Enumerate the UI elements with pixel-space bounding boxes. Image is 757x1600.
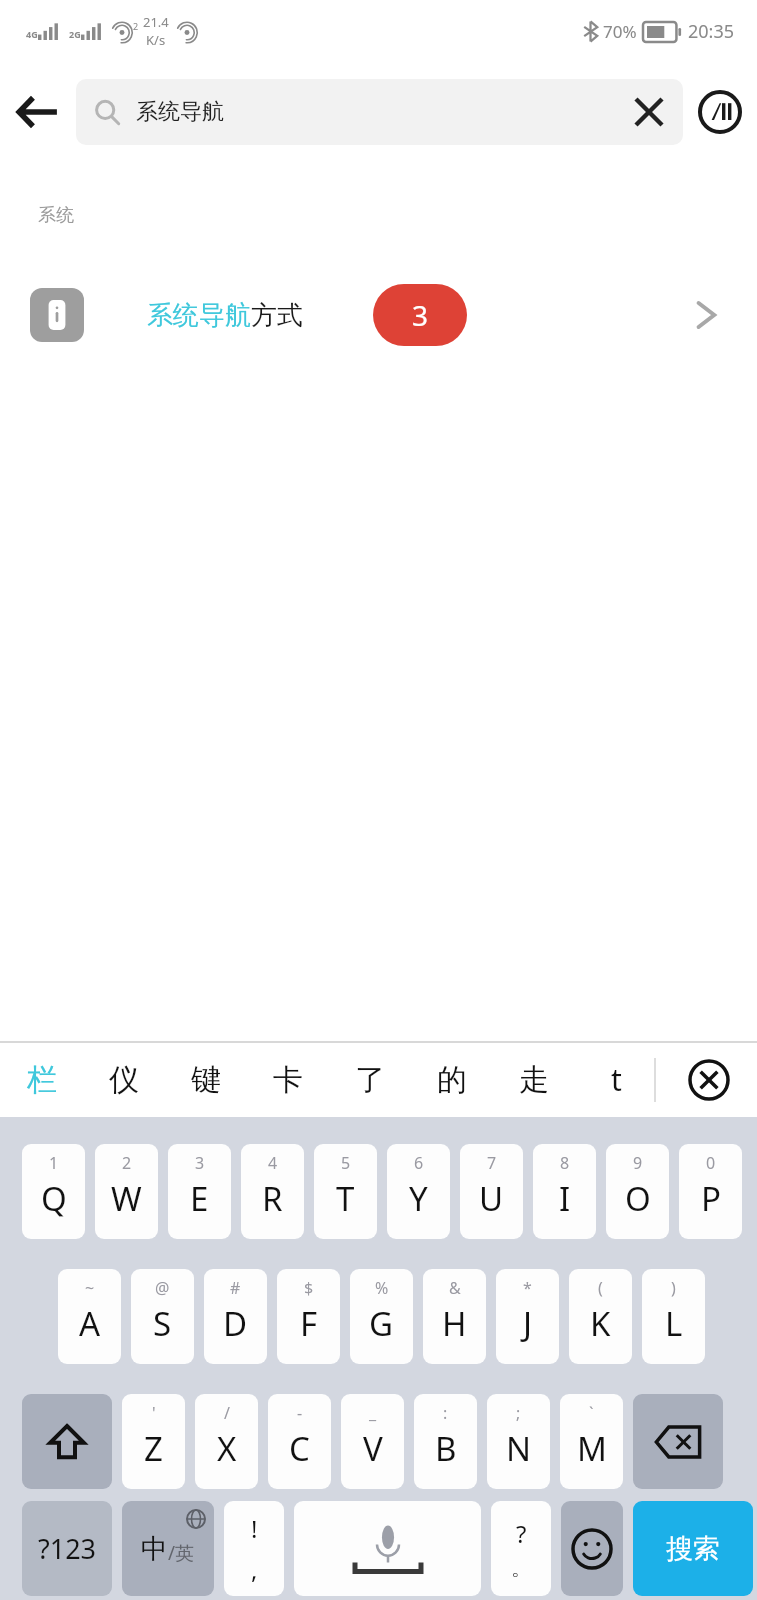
staticText: 7 <box>487 1152 497 1174</box>
button[interactable]: 仪 <box>83 1042 165 1117</box>
button[interactable]: ` <box>560 1394 623 1489</box>
staticText: 4G <box>26 28 38 40</box>
button[interactable]: 0 <box>679 1144 742 1239</box>
staticText: ! <box>251 1512 258 1545</box>
staticText: G <box>369 1301 394 1346</box>
staticText: / <box>224 1402 230 1424</box>
button[interactable]: - <box>268 1394 331 1489</box>
button[interactable]: ~ <box>58 1269 121 1364</box>
staticText: # <box>230 1277 241 1299</box>
staticText: K/s <box>146 31 166 49</box>
staticText: 卡 <box>273 1061 303 1099</box>
button[interactable]: 系统导航 <box>0 267 757 363</box>
staticText: ( <box>598 1277 603 1299</box>
button[interactable]: Clear <box>621 84 677 140</box>
staticText: - <box>297 1402 303 1424</box>
staticText: M <box>577 1426 607 1471</box>
staticText: 方式 <box>251 299 303 332</box>
staticText: H <box>442 1301 467 1346</box>
button[interactable]: 2 <box>95 1144 158 1239</box>
button[interactable]: 8 <box>533 1144 596 1239</box>
staticText: 键 <box>191 1061 221 1099</box>
staticText: & <box>449 1277 461 1299</box>
staticText: K <box>590 1301 611 1346</box>
button[interactable]: Emoji <box>561 1501 623 1596</box>
staticText: ; <box>516 1402 521 1424</box>
button[interactable]: @ <box>131 1269 194 1364</box>
staticText: @ <box>155 1277 170 1299</box>
staticText: : <box>443 1402 448 1424</box>
staticText: 搜索 <box>666 1532 720 1566</box>
staticText: 系统导航 <box>147 299 251 332</box>
button[interactable]: ' <box>122 1394 185 1489</box>
staticText: ` <box>589 1402 594 1424</box>
button[interactable]: ! <box>224 1501 284 1596</box>
staticText: 2 <box>122 1152 132 1174</box>
staticText: 系统导航 <box>136 98 224 126</box>
button[interactable]: _ <box>341 1394 404 1489</box>
button[interactable]: t <box>575 1042 657 1117</box>
staticText: A <box>79 1301 101 1346</box>
staticText: 系统 <box>38 204 74 227</box>
button[interactable]: Backspace <box>633 1394 723 1489</box>
button[interactable]: Space <box>294 1501 481 1596</box>
staticText: 3 <box>412 296 429 334</box>
button[interactable]: 3 <box>168 1144 231 1239</box>
button[interactable]: ? <box>491 1501 551 1596</box>
button[interactable]: 6 <box>387 1144 450 1239</box>
staticText: 20:35 <box>688 19 735 44</box>
staticText: R <box>262 1176 283 1221</box>
staticText: J <box>523 1301 533 1346</box>
staticText: S <box>153 1301 172 1346</box>
button[interactable]: 1 <box>22 1144 85 1239</box>
button[interactable]: % <box>350 1269 413 1364</box>
button[interactable]: / <box>195 1394 258 1489</box>
staticText: I <box>559 1176 571 1221</box>
button[interactable]: & <box>423 1269 486 1364</box>
button[interactable]: ) <box>642 1269 705 1364</box>
button[interactable]: 了 <box>329 1042 411 1117</box>
button[interactable]: Voice search <box>683 75 757 149</box>
staticText: Y <box>409 1176 428 1221</box>
button[interactable]: 的 <box>411 1042 493 1117</box>
button[interactable]: # <box>204 1269 267 1364</box>
button[interactable]: Back <box>0 74 76 150</box>
staticText: F <box>300 1301 318 1346</box>
button[interactable]: Shift <box>22 1394 112 1489</box>
staticText: V <box>363 1426 383 1471</box>
staticText: ' <box>152 1402 156 1424</box>
button[interactable]: 键 <box>165 1042 247 1117</box>
button[interactable]: 系统导航 <box>76 79 683 145</box>
staticText: 2G <box>69 28 81 40</box>
staticText: E <box>190 1176 209 1221</box>
button[interactable]: 中 <box>122 1501 214 1596</box>
staticText: 6 <box>414 1152 424 1174</box>
staticText: B <box>435 1426 457 1471</box>
button[interactable]: 卡 <box>247 1042 329 1117</box>
button[interactable]: ; <box>487 1394 550 1489</box>
button[interactable]: 栏 <box>0 1042 83 1117</box>
staticText: , <box>251 1553 258 1586</box>
button[interactable]: ?123 <box>22 1501 112 1596</box>
staticText: _ <box>369 1402 377 1424</box>
button[interactable]: 搜索 <box>633 1501 753 1596</box>
button[interactable]: : <box>414 1394 477 1489</box>
button[interactable]: $ <box>277 1269 340 1364</box>
staticText: 走 <box>519 1061 549 1099</box>
button[interactable]: 9 <box>606 1144 669 1239</box>
button[interactable]: 7 <box>460 1144 523 1239</box>
staticText: U <box>479 1176 504 1221</box>
button[interactable]: 4 <box>241 1144 304 1239</box>
staticText: 70% <box>603 20 637 43</box>
staticText: ~ <box>85 1277 95 1299</box>
staticText: ) <box>671 1277 676 1299</box>
button[interactable]: 走 <box>493 1042 575 1117</box>
staticText: 9 <box>633 1152 643 1174</box>
button[interactable]: * <box>496 1269 559 1364</box>
button[interactable]: Close keyboard <box>661 1042 757 1117</box>
staticText: 的 <box>437 1061 467 1099</box>
button[interactable]: 5 <box>314 1144 377 1239</box>
staticText: ?123 <box>38 1530 97 1567</box>
button[interactable]: ( <box>569 1269 632 1364</box>
staticText: Q <box>41 1176 67 1221</box>
